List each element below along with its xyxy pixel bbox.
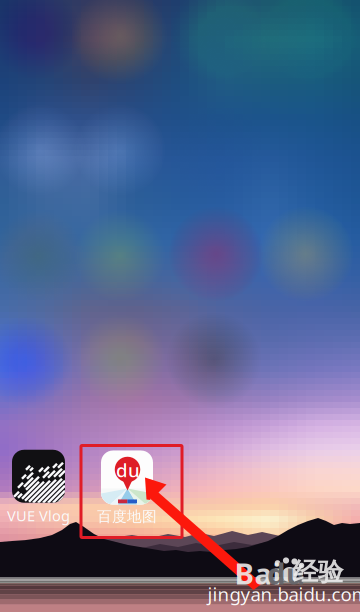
staticText: 经验 xyxy=(293,556,343,587)
staticText: du xyxy=(267,553,305,592)
staticText: jingyan.baidu.com xyxy=(207,582,360,606)
button[interactable]: VUE Vlog xyxy=(0,451,78,524)
staticText: Bai xyxy=(234,553,281,592)
staticText: VUE Vlog xyxy=(7,506,70,525)
button[interactable]: du xyxy=(87,451,167,525)
staticText: du xyxy=(116,458,140,482)
staticText: 百度地图 xyxy=(97,507,157,525)
